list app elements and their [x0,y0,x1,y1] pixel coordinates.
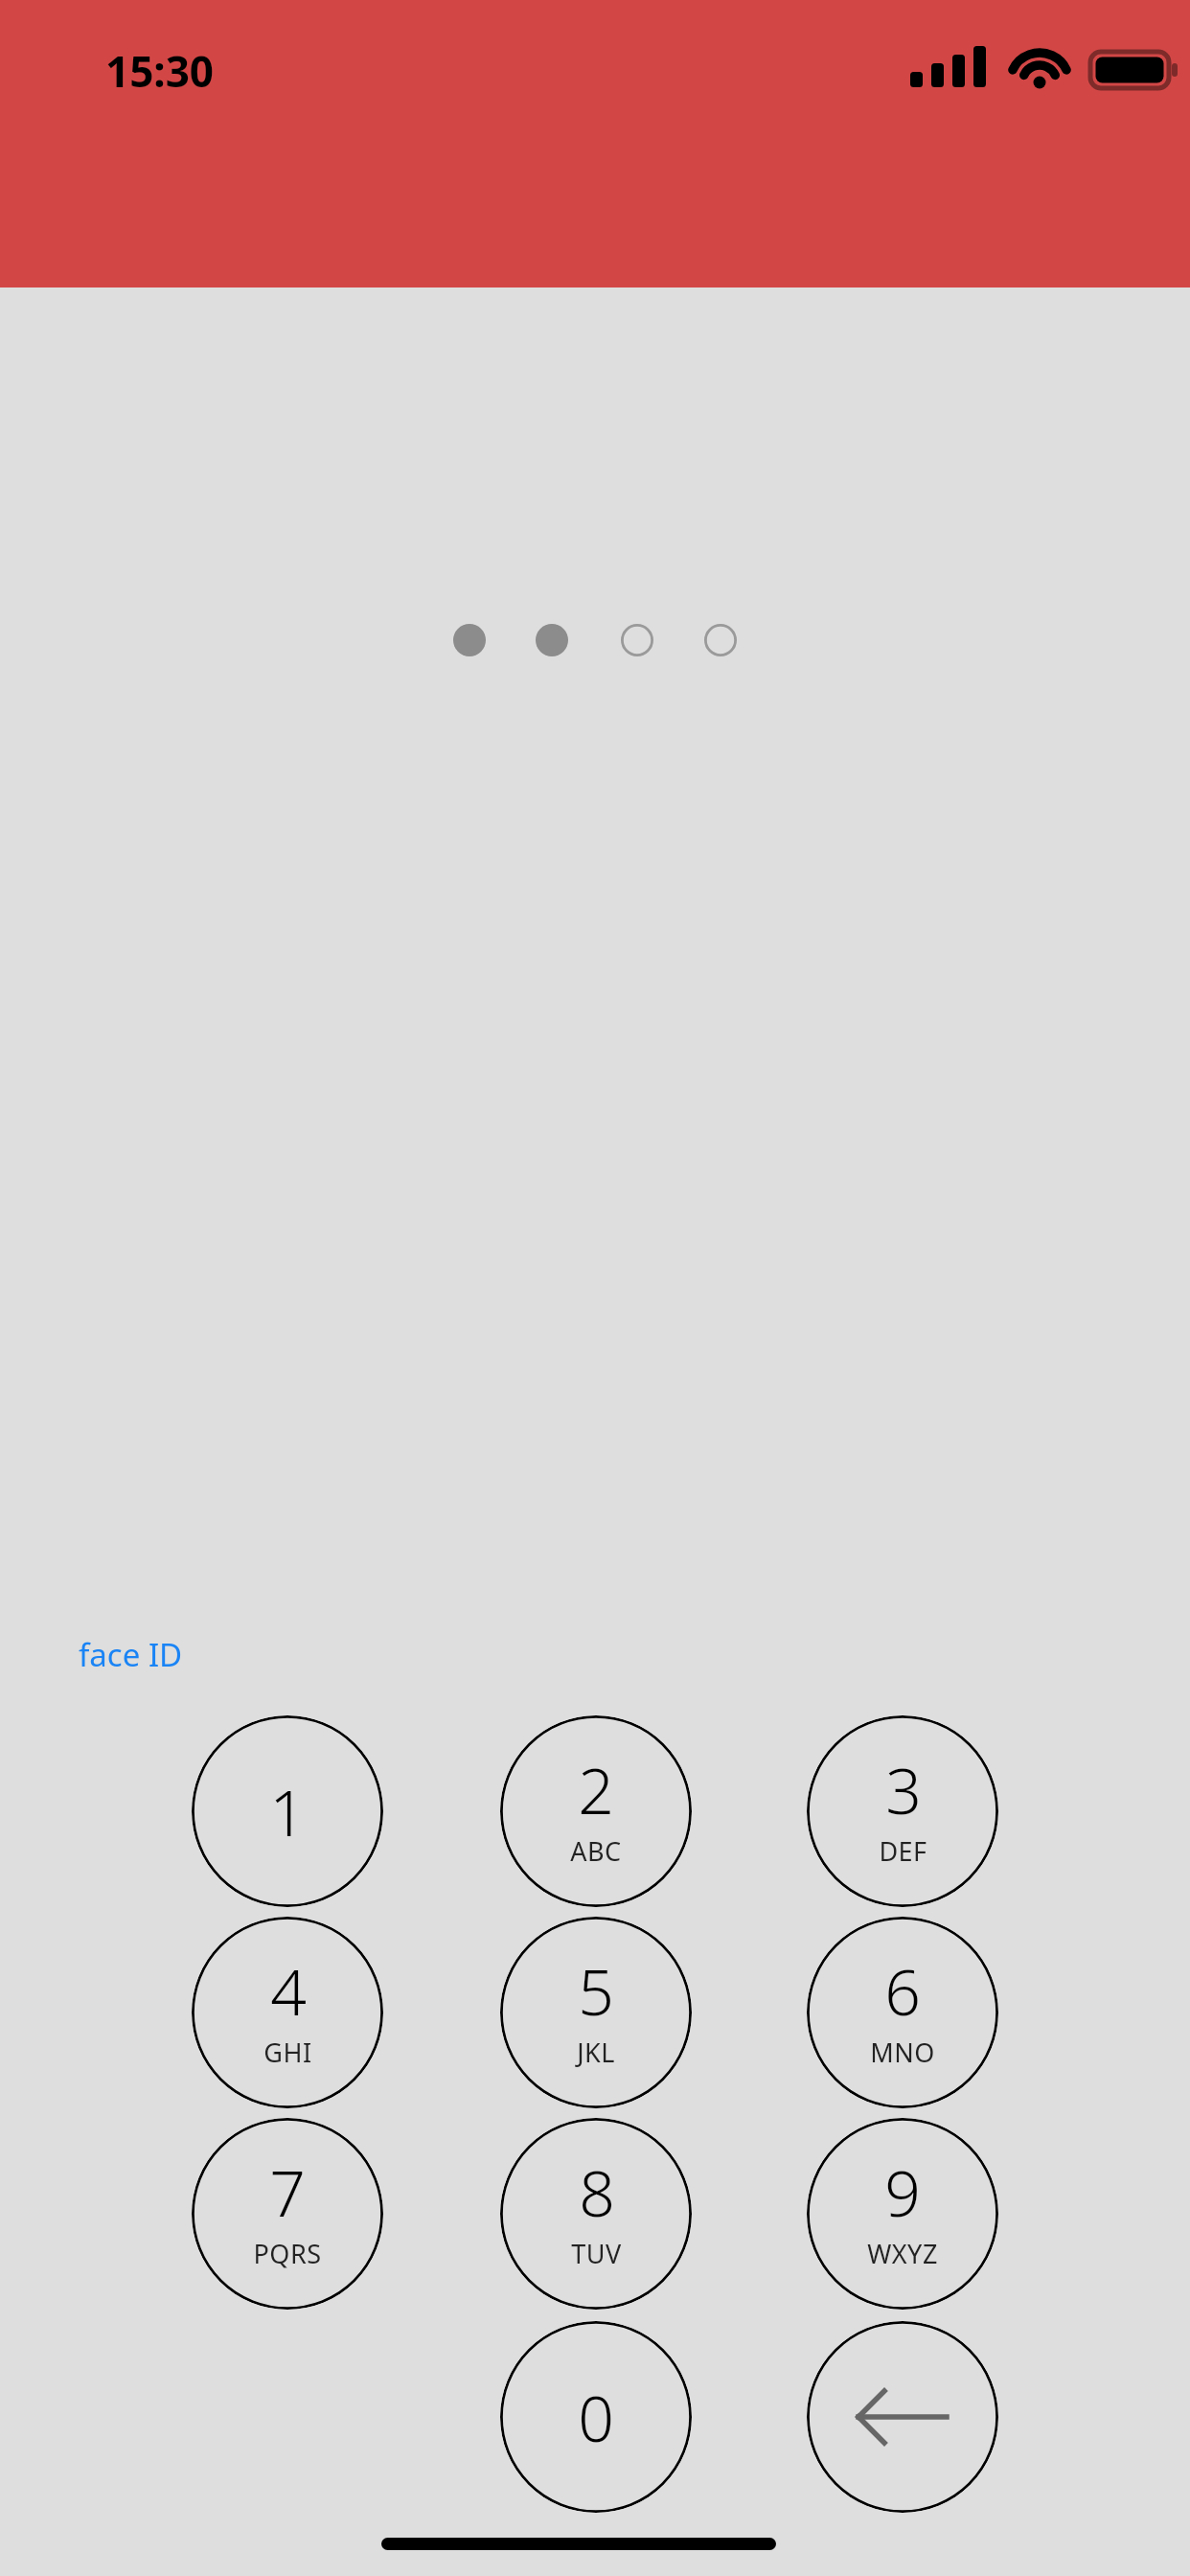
button[interactable]: face ID [75,1629,187,1680]
staticText: ABC [570,1833,622,1869]
staticText: GHI [263,2035,312,2070]
staticText: TUV [571,2236,622,2271]
staticText: 5 [578,1947,614,2034]
staticText: 0 [578,2374,614,2460]
staticText: PQRS [253,2236,322,2271]
staticText: 6 [884,1947,921,2034]
button[interactable]: 5 [500,1917,692,2108]
button[interactable]: 0 [500,2321,692,2513]
staticText: JKL [577,2035,615,2070]
staticText: 4 [270,1947,307,2034]
button[interactable]: 4 [192,1917,383,2108]
staticText: 3 [885,1746,922,1832]
button[interactable]: Backspace [807,2321,998,2513]
staticText: MNO [870,2035,935,2070]
staticText: 7 [269,2149,306,2235]
button[interactable]: 1 [192,1715,383,1907]
staticText: 9 [884,2149,921,2235]
button[interactable]: 2 [500,1715,692,1907]
staticText: 2 [578,1746,614,1832]
staticText: 8 [579,2149,615,2235]
button[interactable]: 3 [807,1715,998,1907]
staticText: WXYZ [867,2236,938,2271]
staticText: 15:30 [105,42,215,100]
staticText: DEF [879,1833,927,1869]
button[interactable]: 9 [807,2118,998,2310]
staticText: face ID [79,1633,183,1676]
button[interactable]: 7 [192,2118,383,2310]
button[interactable]: 6 [807,1917,998,2108]
staticText: 1 [269,1768,306,1854]
button[interactable]: 8 [500,2118,692,2310]
